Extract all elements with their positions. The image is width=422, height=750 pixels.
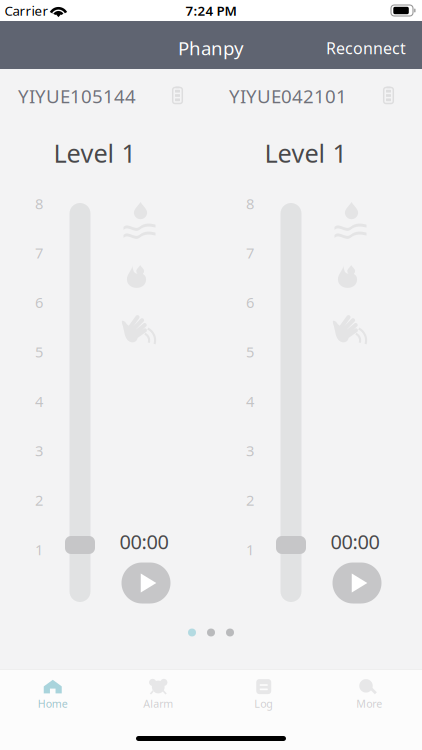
staticText: YIYUE105144 — [18, 84, 136, 108]
staticText: YIYUE042101 — [229, 84, 347, 108]
staticText: 3 — [246, 441, 254, 460]
staticText: 7 — [35, 243, 43, 263]
button[interactable]: Alarm — [105, 670, 211, 717]
staticText: Level 1 — [264, 136, 346, 170]
staticText: 1 — [35, 540, 43, 559]
staticText: 6 — [35, 293, 43, 312]
staticText: Level 1 — [53, 136, 135, 170]
staticText: More — [356, 697, 382, 711]
staticText: 7 — [246, 243, 254, 263]
staticText: 6 — [246, 293, 254, 312]
staticText: Log — [254, 697, 273, 711]
staticText: 00:00 — [119, 528, 168, 555]
staticText: 7:24 PM — [185, 2, 236, 19]
staticText: Reconnect — [326, 37, 406, 59]
staticText: 4 — [246, 391, 254, 411]
button[interactable]: Play — [121, 562, 170, 603]
button[interactable]: Play — [332, 562, 381, 603]
button[interactable]: Home — [0, 670, 105, 717]
staticText: Alarm — [143, 697, 173, 711]
button[interactable]: More — [316, 670, 422, 717]
staticText: 5 — [35, 342, 43, 362]
staticText: 4 — [35, 391, 43, 411]
staticText: Home — [38, 697, 68, 711]
staticText: Phanpy — [178, 36, 244, 60]
staticText: Carrier — [4, 2, 48, 19]
staticText: 8 — [246, 194, 254, 213]
staticText: 2 — [246, 490, 254, 510]
button[interactable]: Log — [211, 670, 316, 717]
staticText: 5 — [246, 342, 254, 362]
staticText: 2 — [35, 490, 43, 510]
staticText: 1 — [246, 540, 254, 559]
button[interactable]: Reconnect — [314, 27, 418, 69]
staticText: 3 — [35, 441, 43, 460]
staticText: 8 — [35, 194, 43, 213]
staticText: 00:00 — [330, 528, 379, 555]
